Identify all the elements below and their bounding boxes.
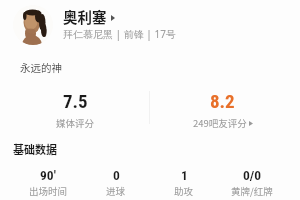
staticText: 永远的神 [20, 60, 62, 75]
staticText: 1 [181, 167, 188, 183]
button[interactable]: 8.2 [150, 90, 295, 130]
staticText: 基础数据 [13, 141, 57, 157]
button[interactable]: 0/0 [218, 167, 286, 198]
staticText: 进球 [106, 184, 126, 198]
staticText: 249吧友评分 [193, 116, 247, 130]
button[interactable]: 0 [82, 167, 150, 198]
staticText: 奥利塞 [63, 6, 107, 27]
button[interactable]: Player avatar [13, 5, 53, 45]
button[interactable]: 奥利塞 [63, 6, 115, 27]
staticText: 0/0 [243, 167, 262, 183]
button[interactable]: 1 [150, 167, 218, 198]
staticText: 出场时间 [29, 184, 68, 198]
button[interactable]: 7.5 [0, 90, 150, 130]
button[interactable]: 90' [14, 167, 82, 198]
staticText: 0 [113, 167, 120, 183]
staticText: 拜仁慕尼黑 | 前锋 | 17号 [63, 27, 176, 41]
staticText: 黄牌/红牌 [231, 184, 273, 198]
staticText: 媒体评分 [56, 116, 95, 130]
staticText: 90' [40, 167, 56, 183]
staticText: 7.5 [63, 90, 88, 112]
staticText: 8.2 [210, 90, 235, 112]
staticText: 助攻 [174, 184, 194, 198]
